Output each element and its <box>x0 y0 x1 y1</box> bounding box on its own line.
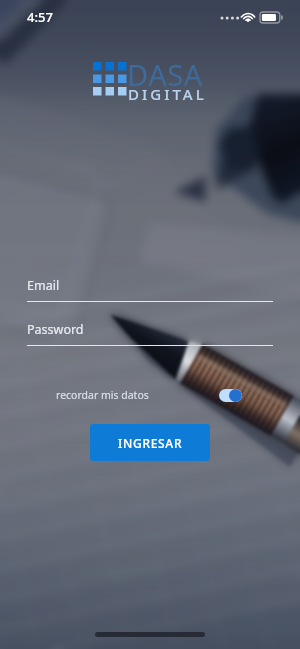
staticText: DIGITAL <box>128 84 207 104</box>
button[interactable]: Password <box>27 321 273 346</box>
button[interactable]: recordar mis datos <box>219 389 242 402</box>
staticText: Email <box>27 277 60 294</box>
staticText: INGRESAR <box>118 435 183 451</box>
staticText: DASA <box>127 55 203 94</box>
staticText: 4:57 <box>27 8 53 26</box>
button[interactable]: INGRESAR <box>90 424 210 461</box>
staticText: recordar mis datos <box>56 388 149 402</box>
button[interactable]: Email <box>27 277 273 302</box>
staticText: Password <box>27 321 84 338</box>
